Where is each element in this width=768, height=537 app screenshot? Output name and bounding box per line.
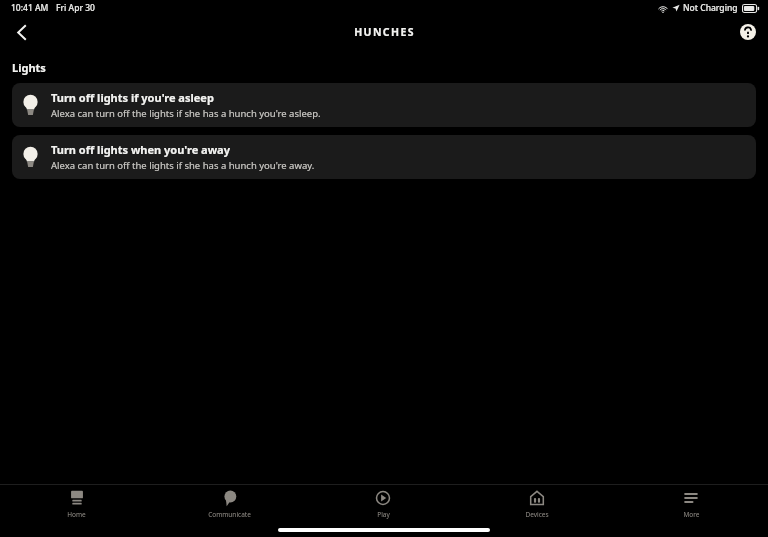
button[interactable]: Devices (460, 485, 614, 523)
staticText: Home (67, 510, 86, 519)
button[interactable]: Play (306, 485, 460, 523)
staticText: Turn off lights if you're asleep (51, 90, 214, 105)
button[interactable]: Turn off lights if you're asleep (12, 83, 756, 127)
staticText: Alexa can turn off the lights if she has… (51, 107, 321, 120)
staticText: Fri Apr 30 (56, 2, 95, 14)
staticText: Turn off lights when you're away (51, 142, 230, 157)
button[interactable]: Back (0, 16, 44, 48)
staticText: Alexa can turn off the lights if she has… (51, 159, 315, 172)
staticText: 10:41 AM (11, 2, 49, 14)
button[interactable]: Home (0, 485, 153, 523)
button[interactable]: Turn off lights when you're away (12, 135, 756, 179)
button[interactable]: Communicate (153, 485, 306, 523)
staticText: HUNCHES (354, 25, 415, 39)
button[interactable]: More (614, 485, 768, 523)
button[interactable]: Help (728, 16, 768, 48)
staticText: Communicate (208, 510, 251, 519)
staticText: More (683, 510, 700, 519)
staticText: Play (377, 510, 390, 519)
staticText: Devices (525, 510, 549, 519)
staticText: Lights (12, 60, 46, 75)
staticText: Not Charging (683, 2, 738, 14)
